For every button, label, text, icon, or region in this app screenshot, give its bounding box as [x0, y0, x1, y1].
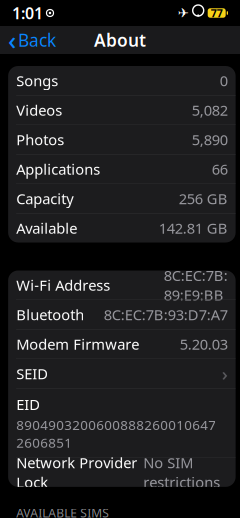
staticText: Photos	[16, 130, 64, 149]
staticText: No SIM restrictions	[143, 453, 220, 492]
staticText: ✈	[178, 5, 189, 20]
staticText: Available	[16, 218, 77, 238]
staticText: 5.20.03	[180, 334, 228, 354]
staticText: 8C:EC:7B:93:D7:A7	[104, 305, 228, 324]
staticText: Songs	[16, 71, 58, 90]
staticText: ‹	[8, 23, 16, 57]
staticText: 142.81 GB	[159, 218, 228, 238]
staticText: AVAILABLE SIMS	[16, 505, 109, 518]
staticText: 256 GB	[179, 189, 228, 208]
staticText: Back	[18, 28, 56, 51]
staticText: Network Provider Lock	[16, 453, 137, 492]
staticText: Applications	[16, 159, 100, 179]
staticText: About	[94, 28, 146, 51]
staticText: 5,890	[192, 130, 228, 149]
staticText: Wi-Fi Address	[16, 275, 110, 295]
staticText: 77	[211, 6, 223, 20]
staticText: Capacity	[16, 189, 73, 208]
staticText: Videos	[16, 100, 62, 120]
staticText: 8C:EC:7B:89:E9:BB	[164, 265, 228, 304]
staticText: 1:01	[12, 2, 43, 24]
button[interactable]: SEID	[8, 359, 236, 388]
staticText: 66	[212, 159, 228, 179]
staticText: 89049032006008882600106472606851	[16, 416, 216, 451]
staticText: Modem Firmware	[16, 334, 139, 354]
staticText: Bluetooth	[16, 305, 84, 324]
staticText: 0	[220, 71, 228, 90]
button[interactable]: ‹	[0, 26, 64, 54]
staticText: EID	[16, 394, 40, 414]
staticText: SEID	[16, 364, 48, 383]
staticText: 5,082	[192, 100, 228, 120]
staticText: ›	[222, 361, 228, 386]
